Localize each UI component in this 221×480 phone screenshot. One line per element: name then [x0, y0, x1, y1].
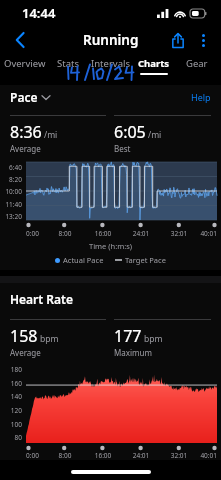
staticText: /mi — [148, 129, 162, 141]
staticText: 8:00 — [46, 451, 84, 460]
staticText: Help — [191, 91, 211, 103]
staticText: Average — [10, 143, 41, 154]
staticText: 40:01 — [198, 229, 217, 238]
button[interactable]: Charts — [132, 54, 175, 78]
staticText: 140 — [0, 392, 22, 401]
staticText: Target Pace — [125, 255, 166, 265]
staticText: 16:00 — [84, 229, 122, 238]
staticText: Intervals — [91, 57, 130, 70]
staticText: 8:00 — [46, 229, 84, 238]
staticText: 8:20 — [0, 175, 22, 184]
staticText: bpm — [40, 333, 59, 345]
staticText: 100 — [0, 420, 22, 429]
staticText: 13:20 — [0, 212, 22, 221]
staticText: Time (h:m:s) — [0, 241, 221, 251]
staticText: 6:40 — [0, 163, 22, 172]
staticText: 177 — [114, 325, 142, 347]
staticText: Heart Rate — [10, 291, 73, 307]
staticText: 14:44 — [22, 4, 56, 22]
button[interactable]: Gear — [175, 54, 218, 78]
staticText: 6:05 — [114, 121, 146, 143]
staticText: Stats — [57, 57, 79, 70]
staticText: 32:01 — [160, 229, 198, 238]
staticText: 24:01 — [122, 451, 160, 460]
staticText: 10:00 — [0, 187, 22, 196]
staticText: Pace — [10, 89, 38, 105]
staticText: bpm — [144, 333, 163, 345]
staticText: /mi — [44, 129, 58, 141]
staticText: Running — [83, 31, 139, 49]
staticText: 0:00 — [26, 229, 46, 238]
button[interactable]: Intervals — [89, 54, 132, 78]
staticText: Average — [10, 347, 41, 358]
button[interactable]: Share — [165, 27, 191, 53]
staticText: 158 — [10, 325, 38, 347]
staticText: Overview — [4, 57, 46, 70]
staticText: 40:01 — [198, 451, 217, 460]
staticText: 0:00 — [26, 451, 46, 460]
staticText: 32:01 — [160, 451, 198, 460]
staticText: 16:00 — [84, 451, 122, 460]
staticText: 11:40 — [0, 200, 22, 209]
staticText: 24:01 — [122, 229, 160, 238]
button[interactable]: Back — [5, 26, 35, 54]
staticText: Maximum — [114, 347, 152, 358]
staticText: Best — [114, 143, 131, 154]
button[interactable]: Stats — [46, 54, 89, 78]
staticText: 180 — [0, 365, 22, 374]
staticText: 160 — [0, 379, 22, 388]
staticText: Gear — [186, 57, 208, 70]
staticText: 120 — [0, 406, 22, 415]
staticText: 80 — [0, 433, 22, 442]
staticText: Charts — [138, 57, 170, 70]
staticText: 8:36 — [10, 121, 42, 143]
button[interactable]: Help — [191, 91, 211, 103]
button[interactable]: More options — [191, 28, 215, 52]
button[interactable]: Pace — [10, 89, 50, 105]
button[interactable]: Overview — [3, 54, 46, 78]
staticText: Actual Pace — [63, 255, 104, 265]
